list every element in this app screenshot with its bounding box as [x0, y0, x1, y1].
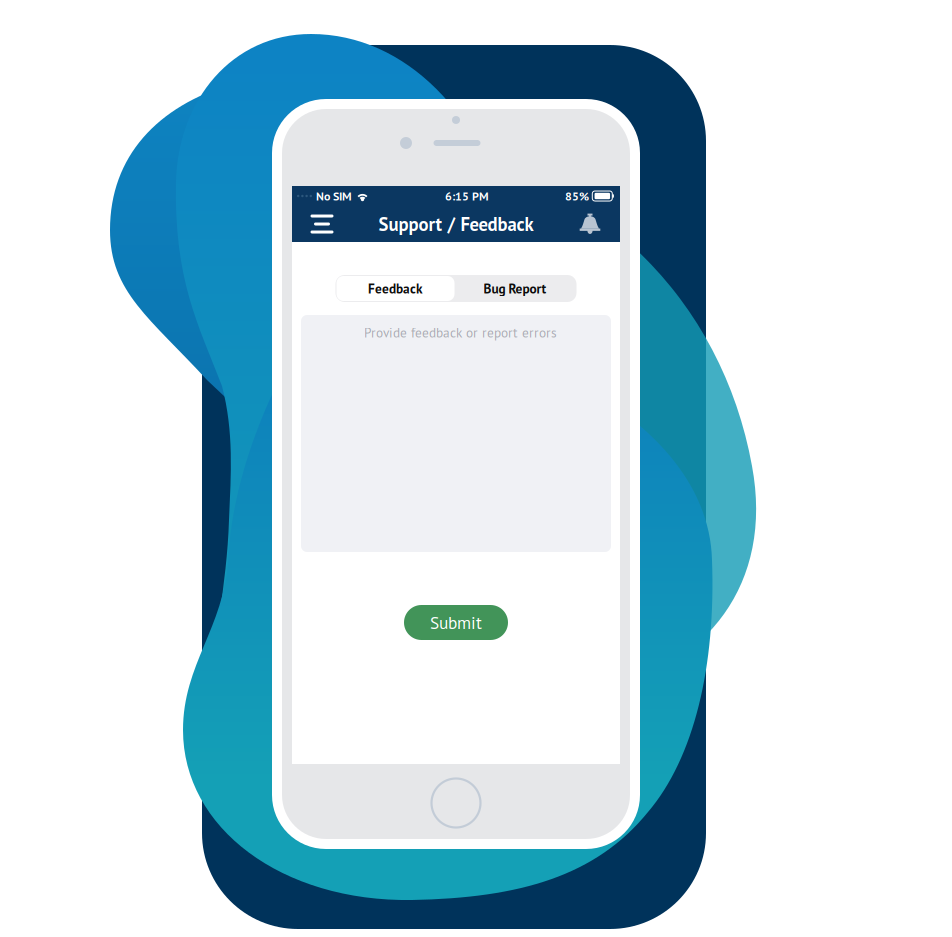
- button[interactable]: Feedback: [336, 276, 454, 301]
- staticText: 85%: [565, 188, 589, 204]
- staticText: No SIM: [316, 188, 352, 204]
- button[interactable]: Bug Report: [454, 276, 575, 301]
- staticText: 6:15 PM: [445, 188, 489, 204]
- button[interactable]: Submit: [404, 605, 508, 640]
- staticText: Support / Feedback: [378, 212, 533, 236]
- button[interactable]: Menu: [301, 206, 343, 242]
- staticText: Submit: [430, 611, 482, 634]
- staticText: Feedback: [368, 280, 423, 297]
- staticText: Bug Report: [483, 280, 546, 297]
- button[interactable]: Notifications: [569, 206, 611, 242]
- staticText: Provide feedback or report errors: [364, 324, 557, 341]
